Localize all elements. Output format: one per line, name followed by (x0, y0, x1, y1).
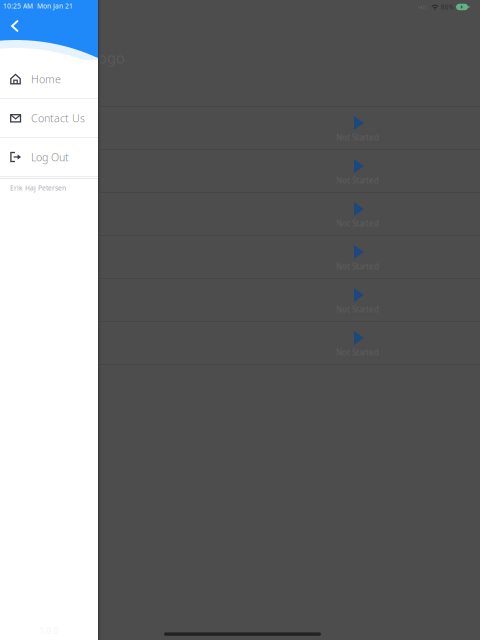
button[interactable]: Home (0, 60, 98, 98)
staticText: Not Started (336, 218, 379, 229)
staticText: Not Started (336, 132, 379, 143)
staticText: Home (31, 72, 61, 86)
staticText: Not Started (336, 304, 379, 315)
staticText: Erik Haj Petersen (10, 184, 66, 192)
button[interactable]: Back (1, 13, 29, 39)
button[interactable]: Contact Us (0, 99, 98, 137)
staticText: Not Started (336, 175, 379, 186)
staticText: 1.0.0 (39, 626, 58, 636)
staticText: 10:25 AM Mon Jan 21 (3, 2, 73, 10)
staticText: Contact Us (31, 111, 85, 125)
staticText: Logo (90, 48, 125, 67)
staticText: 86% (440, 3, 454, 11)
button[interactable]: Log Out (0, 138, 98, 176)
staticText: Not Started (336, 261, 379, 272)
staticText: Log Out (31, 150, 69, 164)
staticText: Not Started (336, 347, 379, 358)
